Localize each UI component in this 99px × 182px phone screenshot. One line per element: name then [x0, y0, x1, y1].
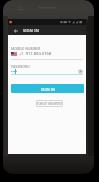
staticText: +1 917-800-0168 [19, 51, 52, 56]
staticText: MOBILE NUMBER [11, 46, 41, 51]
staticText: •••• [11, 69, 18, 74]
button[interactable]: Show password [77, 68, 83, 74]
staticText: FORGOT PASSWORD [37, 102, 62, 106]
staticText: SIGN IN [23, 28, 39, 33]
button[interactable]: FORGOT PASSWORD [36, 100, 63, 107]
button[interactable]: SIGN IN [11, 84, 84, 93]
button[interactable]: Back [12, 27, 19, 34]
staticText: PASSWORD [11, 64, 30, 69]
staticText: SIGN IN [41, 87, 55, 91]
